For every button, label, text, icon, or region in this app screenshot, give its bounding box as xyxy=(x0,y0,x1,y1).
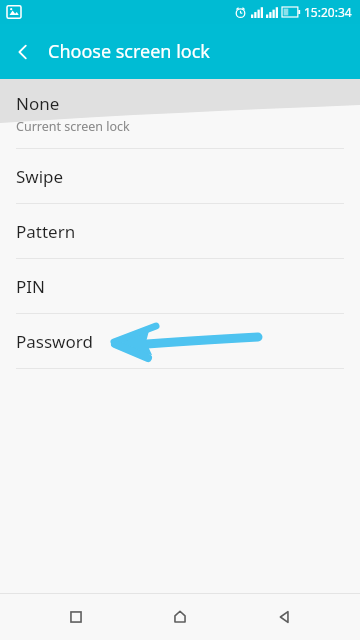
staticText: Swipe xyxy=(16,165,64,188)
button[interactable]: None xyxy=(0,79,360,148)
staticText: None xyxy=(16,92,60,115)
button[interactable]: Home xyxy=(152,593,208,640)
staticText: Current screen lock xyxy=(16,118,130,135)
staticText: Password xyxy=(16,330,93,353)
button[interactable]: Recents xyxy=(48,593,104,640)
staticText: Pattern xyxy=(16,220,76,243)
button[interactable]: Back xyxy=(256,593,312,640)
button[interactable]: Pattern xyxy=(0,204,360,258)
staticText: PIN xyxy=(16,275,45,298)
button[interactable]: Password xyxy=(0,314,360,368)
button[interactable]: Swipe xyxy=(0,149,360,203)
button[interactable]: PIN xyxy=(0,259,360,313)
button[interactable]: Back xyxy=(0,24,46,79)
staticText: 15:20:34 xyxy=(304,4,352,20)
staticText: Choose screen lock xyxy=(48,39,210,64)
